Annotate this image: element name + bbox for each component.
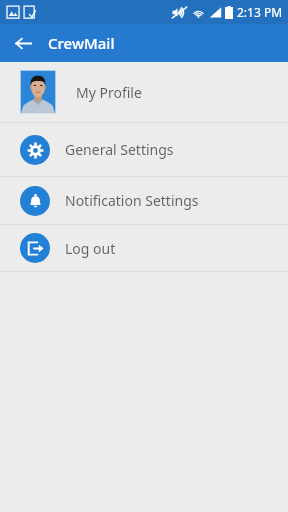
button[interactable]: My Profile xyxy=(0,62,288,122)
staticText: Notification Settings xyxy=(65,191,199,210)
button[interactable]: Back xyxy=(8,28,38,58)
staticText: 2:13 PM xyxy=(237,4,283,20)
staticText: General Settings xyxy=(65,140,174,159)
button[interactable]: Log out xyxy=(0,225,288,271)
button[interactable]: Notification Settings xyxy=(0,177,288,224)
staticText: CrewMail xyxy=(48,33,115,53)
staticText: Log out xyxy=(65,239,116,258)
staticText: My Profile xyxy=(76,83,142,102)
button[interactable]: General Settings xyxy=(0,123,288,176)
